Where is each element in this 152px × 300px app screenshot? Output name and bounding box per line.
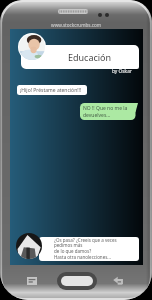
staticText: www.stockcrumbs.com xyxy=(51,22,101,28)
button[interactable]: ¡Hijo! Préstame atención!!! xyxy=(17,85,87,95)
button[interactable]: NO !! Que no me la devuelves... xyxy=(80,103,138,120)
button[interactable]: Menu xyxy=(27,277,37,285)
staticText: ¿Os pasa? ¿Creeis que a veces pedimos má… xyxy=(54,237,136,261)
staticText: by Oskar xyxy=(112,68,132,75)
button[interactable]: Back xyxy=(113,276,126,286)
button[interactable]: ¿Os pasa? ¿Creeis que a veces pedimos má… xyxy=(39,237,139,261)
staticText: ¡Hijo! Préstame atención!!! xyxy=(20,87,82,94)
button[interactable]: Home xyxy=(57,272,97,290)
button[interactable]: Educación xyxy=(21,45,139,69)
staticText: NO !! Que no me la devuelves... xyxy=(83,105,132,119)
staticText: Educación xyxy=(68,51,112,63)
